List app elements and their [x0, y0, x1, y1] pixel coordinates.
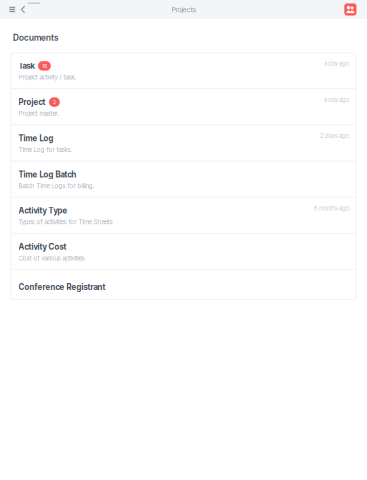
button[interactable]: Back [18, 0, 28, 19]
staticText: a day ago [324, 60, 349, 67]
button[interactable]: Task [11, 53, 356, 88]
staticText: Types of activities for Time Sheets [19, 218, 113, 226]
staticText: Project [19, 97, 46, 107]
button[interactable]: Open app [344, 3, 356, 16]
button[interactable]: Project [11, 89, 356, 124]
staticText: Task [19, 61, 35, 71]
staticText: 2 days ago [320, 132, 349, 140]
button[interactable]: Activity Cost [11, 234, 356, 269]
staticText: Cost of various activities [19, 254, 85, 262]
staticText: Project master. [19, 109, 60, 117]
button[interactable]: Time Log Batch [11, 161, 356, 197]
staticText: 6 months ago [314, 204, 349, 212]
staticText: Project activity / task. [19, 73, 77, 81]
staticText: Documents [13, 32, 58, 43]
button[interactable]: Time Log [11, 125, 356, 161]
staticText: Time Log for tasks. [19, 146, 73, 153]
staticText: Batch Time Logs for billing. [19, 182, 95, 190]
button[interactable]: Conference Registrant [11, 270, 356, 299]
staticText: Conference Registrant [19, 282, 106, 292]
button[interactable]: Activity Type [11, 198, 356, 233]
staticText: Time Log Batch [19, 170, 77, 179]
staticText: a day ago [324, 96, 349, 103]
staticText: Activity Cost [19, 242, 67, 252]
staticText: 16 [42, 62, 47, 69]
staticText: Time Log [19, 133, 54, 143]
staticText: Activity Type [19, 206, 68, 215]
staticText: Projects [171, 5, 195, 14]
staticText: 2 [53, 99, 56, 105]
button[interactable]: Menu [6, 0, 18, 19]
